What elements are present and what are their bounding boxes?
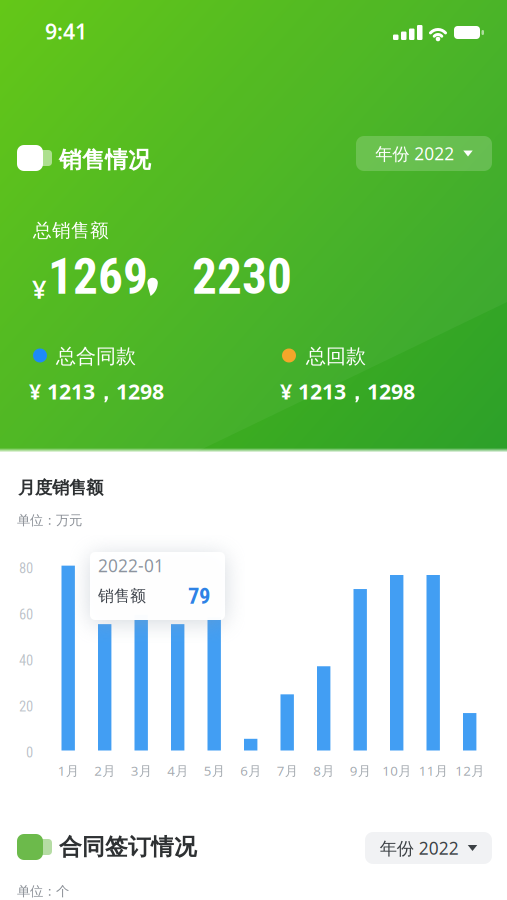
staticText: 月度销售额 [18, 477, 103, 498]
staticText: ¥ 1213，1298 [29, 377, 164, 405]
button[interactable]: 年份 2022 [365, 832, 492, 864]
staticText: 6月 [240, 762, 261, 779]
staticText: 总回款 [306, 344, 366, 369]
staticText: 2230 [192, 248, 292, 306]
staticText: 4月 [167, 762, 188, 779]
staticText: 12月 [455, 762, 484, 779]
button[interactable]: 年份 2022 [356, 136, 492, 171]
staticText: 9月 [350, 762, 371, 779]
staticText: 3月 [131, 762, 152, 779]
staticText: ¥ 1213，1298 [280, 377, 415, 405]
staticText: 总合同款 [56, 344, 136, 369]
staticText: 79 [188, 583, 210, 609]
staticText: 2月 [94, 762, 115, 779]
staticText: 20 [19, 698, 33, 715]
staticText: 2022-01 [98, 554, 164, 577]
staticText: 7月 [277, 762, 298, 779]
staticText: 单位：万元 [17, 512, 82, 528]
staticText: 单位：个 [17, 883, 69, 899]
staticText: 80 [19, 560, 33, 577]
staticText: ¥ [32, 272, 46, 306]
staticText: 9:41 [45, 17, 87, 45]
staticText: 销售额 [98, 586, 146, 606]
staticText: 10月 [382, 762, 411, 779]
staticText: 1269 [48, 248, 148, 306]
staticText: 合同签订情况 [59, 833, 197, 861]
staticText: 8月 [313, 762, 334, 779]
staticText: 年份 2022 [380, 836, 459, 859]
staticText: 11月 [419, 762, 448, 779]
staticText: 销售情况 [59, 146, 151, 174]
staticText: 年份 2022 [375, 142, 454, 165]
staticText: 40 [19, 652, 33, 669]
staticText: 1月 [58, 762, 79, 779]
staticText: 总销售额 [33, 219, 109, 242]
staticText: 60 [19, 606, 33, 623]
staticText: 5月 [204, 762, 225, 779]
staticText: 0 [26, 744, 33, 761]
